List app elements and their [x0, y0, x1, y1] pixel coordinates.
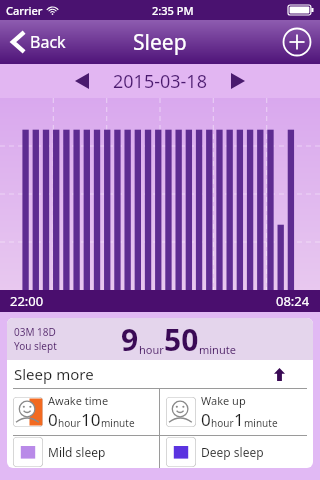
- staticText: 50: [164, 319, 199, 360]
- staticText: 2015-03-18: [113, 69, 207, 94]
- other: Awake: [13, 397, 43, 427]
- staticText: hour: [139, 342, 164, 357]
- staticText: 9: [121, 319, 139, 360]
- staticText: You slept: [14, 339, 57, 353]
- staticText: 08:24: [276, 292, 310, 310]
- staticText: Awake time: [48, 393, 109, 408]
- button[interactable]: Wake up: [160, 389, 313, 435]
- other: Wake up: [166, 397, 196, 427]
- button[interactable]: Deep sleep: [160, 436, 313, 468]
- staticText: 0: [201, 408, 211, 431]
- staticText: minute: [244, 416, 278, 430]
- button[interactable]: Awake: [7, 389, 159, 435]
- staticText: Mild sleep: [48, 444, 106, 460]
- staticText: hour: [58, 416, 81, 430]
- staticText: 0: [48, 408, 58, 431]
- staticText: Wake up: [201, 393, 246, 408]
- button[interactable]: Add: [282, 27, 312, 57]
- staticText: minute: [199, 342, 236, 357]
- staticText: hour: [211, 416, 234, 430]
- staticText: Carrier: [6, 3, 43, 18]
- button[interactable]: Mild sleep: [7, 436, 159, 468]
- staticText: Back: [30, 31, 66, 53]
- button[interactable]: Back: [6, 27, 70, 57]
- staticText: Sleep more: [14, 364, 94, 384]
- staticText: Deep sleep: [201, 444, 264, 460]
- staticText: minute: [101, 416, 135, 430]
- button[interactable]: Previous day: [67, 65, 97, 97]
- staticText: 2:35 PM: [152, 3, 194, 18]
- staticText: 1: [234, 408, 244, 431]
- staticText: 10: [81, 408, 101, 431]
- button[interactable]: Next day: [223, 65, 253, 97]
- staticText: 22:00: [10, 292, 44, 310]
- staticText: Sleep: [133, 28, 187, 57]
- button[interactable]: Sleep more: [7, 360, 313, 388]
- staticText: 03M 18D: [14, 325, 56, 339]
